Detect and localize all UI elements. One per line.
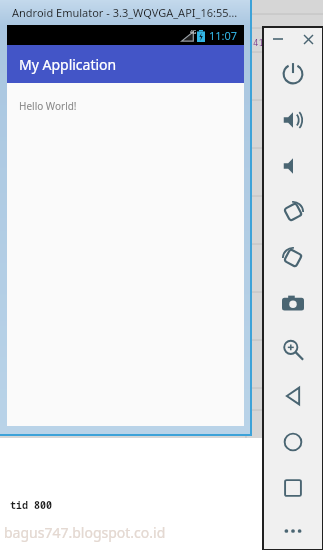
button[interactable]: My Application (7, 45, 244, 83)
staticText: Android Emulator - 3.3_WQVGA_API_16:55… (12, 5, 238, 20)
staticText: My Application (19, 55, 117, 74)
button[interactable]: Back (270, 373, 316, 419)
button[interactable]: Take screenshot (270, 281, 316, 327)
button[interactable]: Close (298, 29, 318, 49)
button[interactable]: Minimize (268, 29, 288, 49)
button[interactable]: Home (270, 419, 316, 465)
staticText: Hello World! (19, 99, 77, 113)
staticText: bagus747.blogspot.co.id (4, 523, 166, 542)
staticText: 41 (253, 36, 264, 48)
staticText: 11:07 (209, 28, 238, 43)
button[interactable]: Overview (270, 465, 316, 511)
button[interactable]: Volume up (270, 97, 316, 143)
button[interactable]: More (270, 511, 316, 550)
button[interactable]: Volume down (270, 143, 316, 189)
button[interactable]: Power (270, 51, 316, 97)
staticText: 4G (190, 29, 197, 36)
staticText: tid 800 (10, 498, 52, 512)
button[interactable]: Rotate left (270, 189, 316, 235)
button[interactable]: Rotate right (270, 235, 316, 281)
button[interactable]: Zoom (270, 327, 316, 373)
